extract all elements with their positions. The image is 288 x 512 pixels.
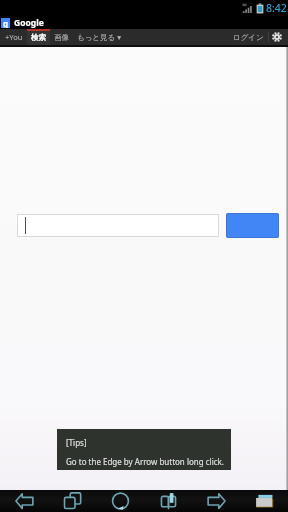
button[interactable]: g <box>1 17 44 29</box>
button[interactable]: +You <box>1 29 27 45</box>
staticText: Google <box>14 17 44 29</box>
button[interactable]: 検索 <box>27 29 50 45</box>
button[interactable]: Windows <box>240 490 288 512</box>
button[interactable] <box>17 214 219 237</box>
button[interactable]: Bookmarks <box>144 490 192 512</box>
button[interactable]: もっと見る ▾ <box>73 29 125 45</box>
button[interactable]: Settings <box>269 29 284 45</box>
button[interactable]: 画像 <box>50 29 73 45</box>
button[interactable]: Refresh <box>96 490 144 512</box>
button[interactable]: ログイン <box>229 29 268 45</box>
staticText: Go to the Edge by Arrow button long clic… <box>66 456 224 467</box>
button[interactable]: Tabs <box>48 490 96 512</box>
staticText: 画像 <box>54 33 69 42</box>
staticText: +You <box>5 32 23 42</box>
button[interactable]: Back <box>0 490 48 512</box>
staticText: 8:42 <box>266 1 287 15</box>
staticText: g <box>3 18 9 28</box>
staticText: ログイン <box>233 33 264 42</box>
button[interactable]: Forward <box>192 490 240 512</box>
staticText: もっと見る ▾ <box>77 32 121 42</box>
staticText: [Tips] <box>66 437 87 448</box>
staticText: 検索 <box>31 33 46 42</box>
button[interactable]: Search <box>226 213 279 238</box>
